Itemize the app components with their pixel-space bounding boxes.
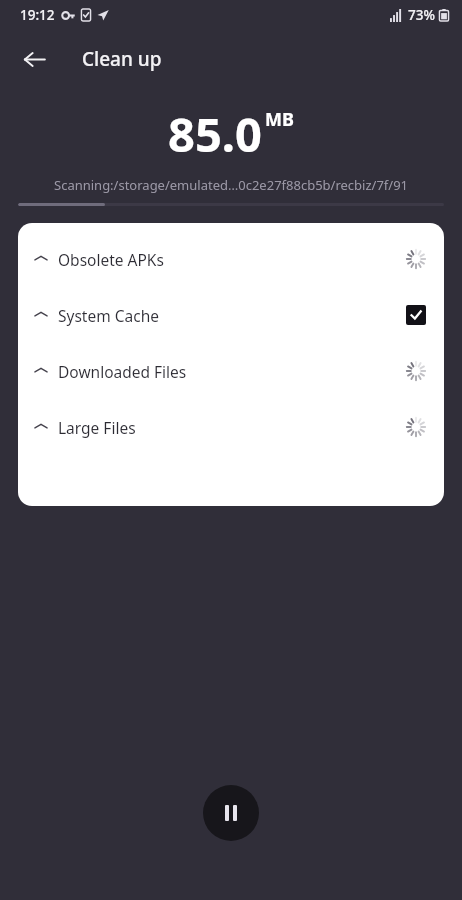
staticText: System Cache	[58, 305, 406, 326]
button[interactable]: System Cache	[18, 287, 444, 343]
button[interactable]: Obsolete APKs	[18, 231, 444, 287]
staticText: 19:12	[20, 6, 55, 24]
button[interactable]: Back	[12, 37, 56, 81]
other: Scanning	[406, 249, 426, 269]
staticText: Scanning:/storage/emulated…0c2e27f88cb5b…	[54, 176, 409, 194]
button[interactable]: Selected	[406, 305, 426, 325]
button[interactable]: Pause	[203, 785, 259, 841]
staticText: 73%	[408, 6, 435, 24]
other: Scanning	[406, 417, 426, 437]
button[interactable]: Downloaded Files	[18, 343, 444, 399]
other: Scanning	[406, 361, 426, 381]
staticText: Obsolete APKs	[58, 249, 406, 270]
staticText: 85.0	[168, 102, 262, 166]
staticText: Clean up	[82, 46, 162, 72]
staticText: Downloaded Files	[58, 361, 406, 382]
staticText: MB	[265, 107, 294, 132]
staticText: Large Files	[58, 417, 406, 438]
button[interactable]: Large Files	[18, 399, 444, 455]
